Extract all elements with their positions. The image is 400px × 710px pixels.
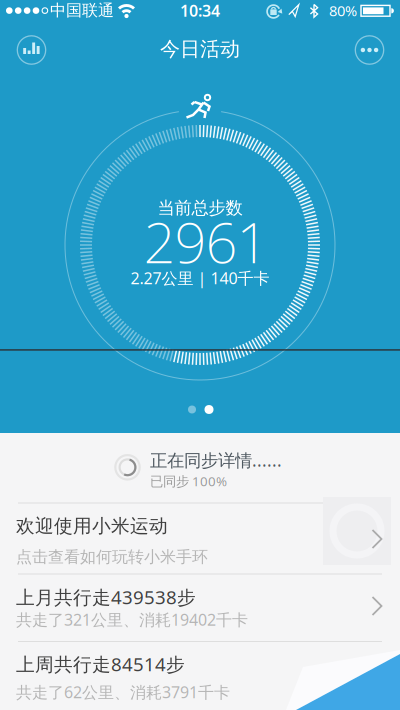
staticText: 2.27公里 | 140千卡 <box>130 267 269 289</box>
staticText: 10:34 <box>180 0 220 21</box>
staticText: 80% <box>329 1 357 20</box>
staticText: 共走了62公里、消耗3791千卡 <box>16 681 230 703</box>
button[interactable]: 上月共行走439538步 <box>0 573 400 641</box>
button[interactable]: 统计 <box>9 28 53 72</box>
button[interactable]: 更多 <box>347 28 391 72</box>
staticText: 欢迎使用小米运动 <box>16 514 168 537</box>
button[interactable]: 欢迎使用小米运动 <box>0 502 400 573</box>
staticText: 中国联通 <box>50 1 114 20</box>
staticText: 已同步 100% <box>150 472 227 490</box>
staticText: 今日活动 <box>160 37 240 61</box>
staticText: 上周共行走84514步 <box>16 652 185 676</box>
staticText: 点击查看如何玩转小米手环 <box>16 547 208 567</box>
staticText: 正在同步详情...... <box>150 448 282 471</box>
staticText: 共走了321公里、消耗19402千卡 <box>16 609 248 630</box>
button[interactable]: 上周共行走84514步 <box>0 641 400 710</box>
staticText: 上月共行走439538步 <box>16 585 196 609</box>
staticText: 2961 <box>143 204 268 279</box>
staticText: 当前总步数 <box>157 197 242 219</box>
